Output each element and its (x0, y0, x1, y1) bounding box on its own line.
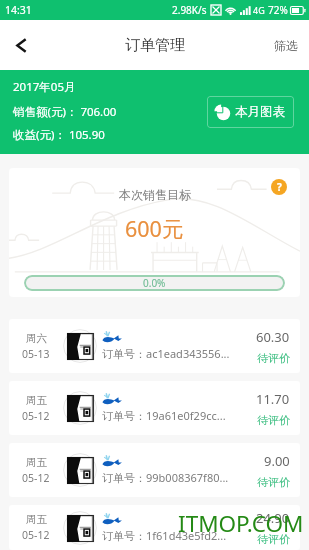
button[interactable]: 周六 (9, 319, 300, 373)
staticText: 11.70 (256, 390, 290, 408)
staticText: 本月图表 (235, 104, 285, 120)
staticText: 05-13 (22, 347, 50, 361)
staticText: 订单号：19a61e0f29cc... (102, 408, 226, 423)
staticText: 4G (253, 4, 265, 16)
staticText: 9.00 (264, 452, 290, 470)
staticText: 待评价 (257, 351, 290, 365)
staticText: 周六 (26, 332, 47, 345)
staticText: 订单号：ac1ead343556... (102, 346, 230, 361)
staticText: 周五 (26, 394, 47, 407)
staticText: 05-12 (22, 409, 50, 423)
button[interactable]: 本月图表 (207, 96, 294, 128)
button[interactable]: 筛选 (274, 20, 298, 70)
staticText: 周五 (26, 456, 47, 469)
staticText: 筛选 (274, 38, 298, 53)
button[interactable]: 周五 (9, 443, 300, 497)
button[interactable]: Help (271, 179, 287, 195)
button[interactable]: 周五 (9, 505, 300, 550)
staticText: 收益(元)： 105.90 (13, 127, 105, 143)
staticText: 待评价 (257, 413, 290, 427)
staticText: 2017年05月 (13, 79, 76, 95)
staticText: 订单号：99b008367f80... (102, 470, 229, 485)
staticText: 14:31 (5, 3, 32, 17)
staticText: 订单号：1f61d43e5fd2... (102, 528, 227, 543)
button[interactable]: Back (0, 20, 42, 70)
staticText: 72% (268, 3, 288, 17)
staticText: 24.90 (256, 509, 290, 527)
staticText: 600元 (125, 214, 184, 243)
staticText: 待评价 (257, 532, 290, 546)
button[interactable]: 本次销售目标 (9, 168, 300, 297)
staticText: 60.30 (256, 328, 290, 346)
staticText: 周五 (26, 513, 47, 526)
staticText: 0.0% (143, 276, 166, 290)
staticText: 订单管理 (125, 36, 185, 55)
staticText: 待评价 (257, 475, 290, 489)
staticText: 05-12 (22, 471, 50, 485)
staticText: ITMOP.COM (178, 508, 304, 539)
staticText: 本次销售目标 (119, 187, 191, 202)
staticText: 销售额(元)： 706.00 (13, 104, 117, 120)
staticText: 2.98K/s (172, 3, 207, 17)
staticText: ? (277, 180, 282, 194)
staticText: 05-12 (22, 528, 50, 542)
button[interactable]: 周五 (9, 381, 300, 435)
